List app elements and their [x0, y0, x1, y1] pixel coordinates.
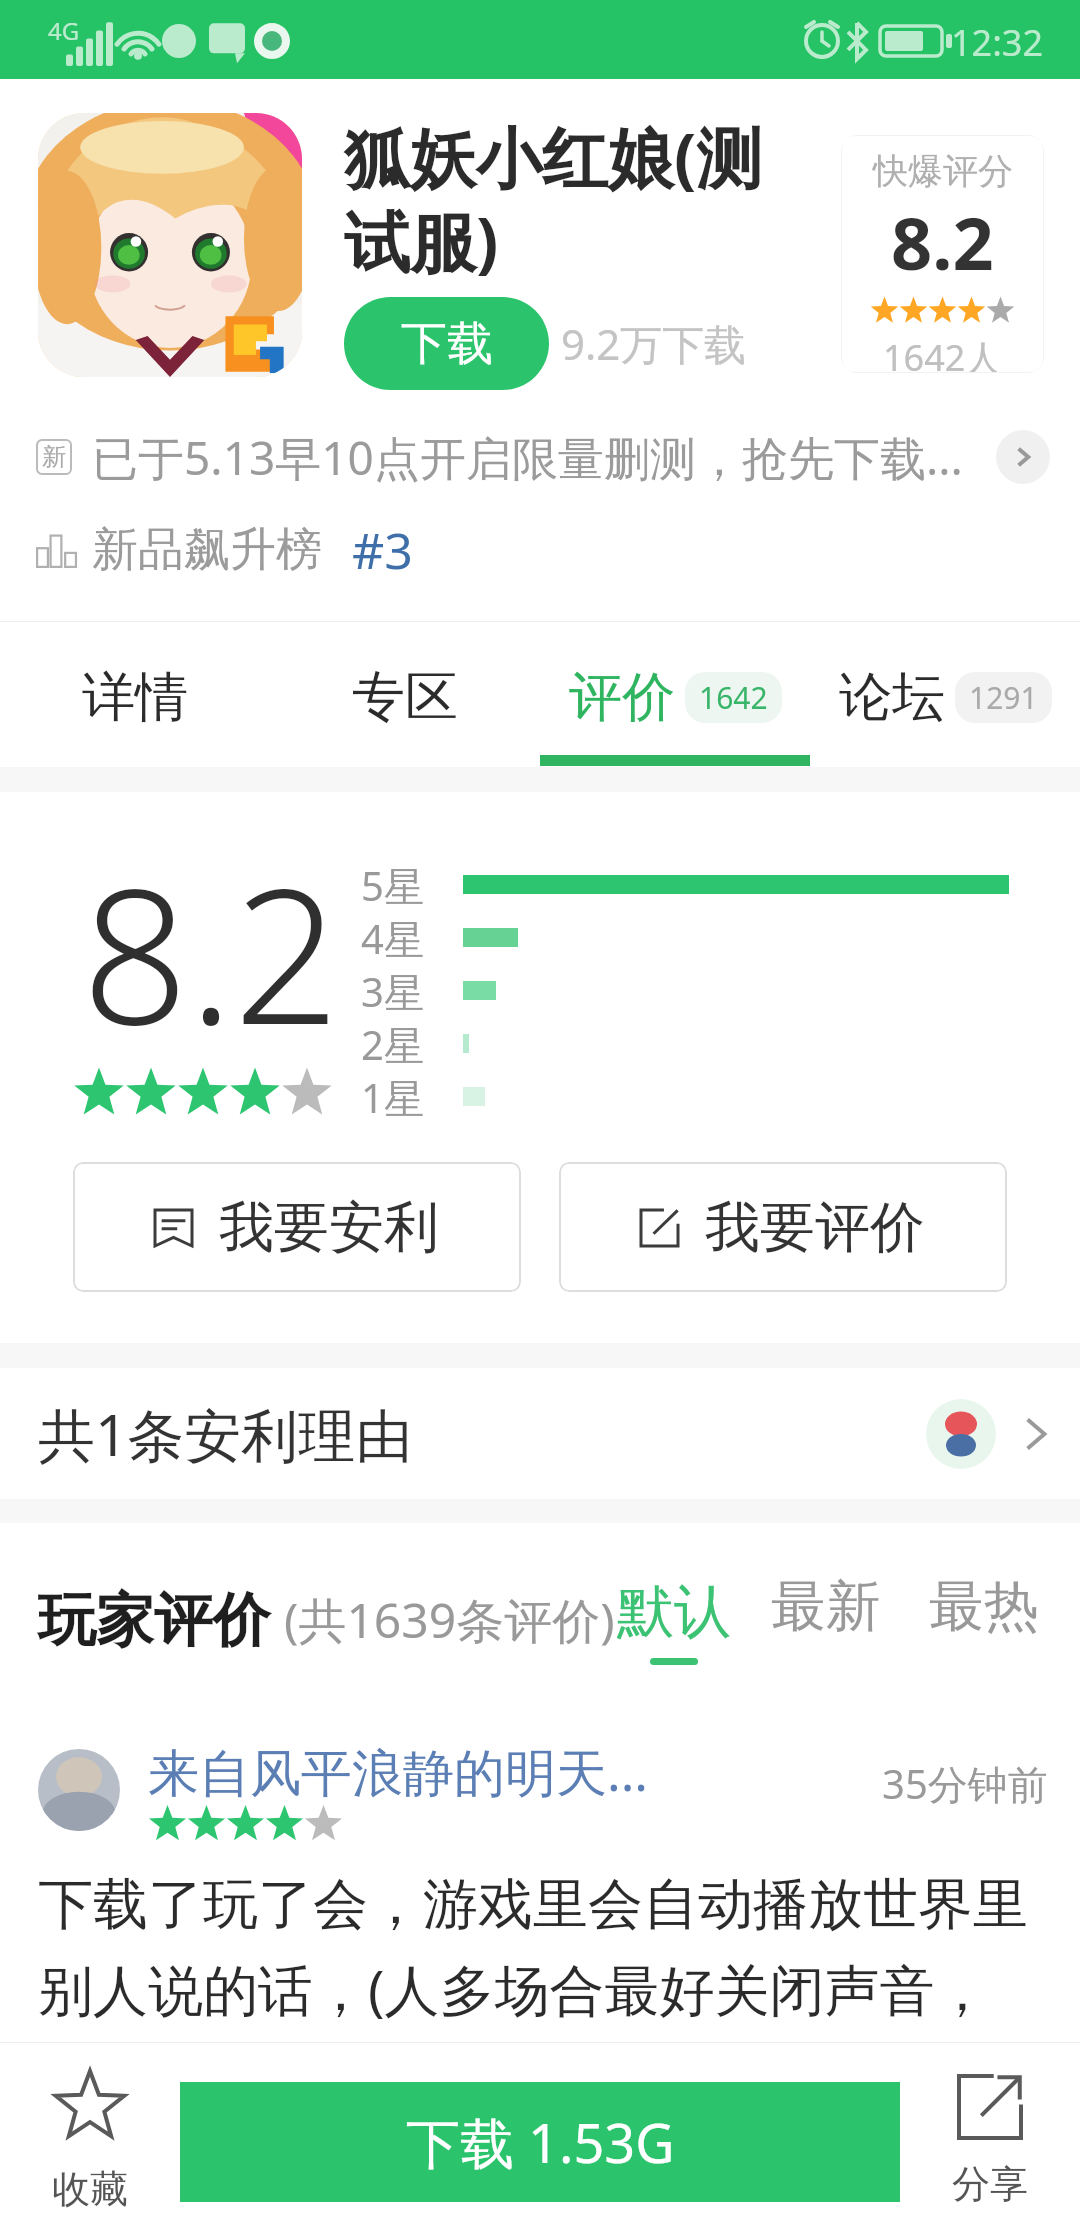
- staticText: 已于5.13早10点开启限量删测，抢先下载...: [92, 426, 963, 489]
- button[interactable]: 评价: [540, 622, 810, 767]
- staticText: 详情: [82, 664, 188, 731]
- staticText: 最新: [771, 1572, 881, 1641]
- staticText: 玩家评价: [38, 1584, 270, 1657]
- staticText: 共1条安利理由: [38, 1395, 413, 1473]
- staticText: 3星: [361, 964, 463, 1017]
- staticText: 最热: [929, 1572, 1039, 1641]
- button[interactable]: 下载: [344, 297, 549, 390]
- button[interactable]: 新品飙升榜: [36, 503, 1044, 621]
- staticText: 默认: [617, 1576, 731, 1648]
- staticText: 4星: [361, 911, 463, 964]
- button[interactable]: 论坛: [810, 622, 1080, 767]
- staticText: 我要安利: [219, 1193, 439, 1262]
- staticText: 分享: [952, 2160, 1028, 2208]
- button[interactable]: 共1条安利理由: [38, 1368, 1050, 1499]
- staticText: 下载: [401, 315, 493, 373]
- staticText: #3: [352, 516, 413, 584]
- staticText: 1星: [361, 1070, 463, 1123]
- button[interactable]: 来自风平浪静的明天...: [0, 1717, 1080, 2026]
- staticText: 5星: [361, 858, 463, 911]
- staticText: 下载 1.53G: [406, 2105, 675, 2179]
- staticText: 1642: [699, 677, 768, 718]
- staticText: 2星: [361, 1017, 463, 1070]
- button[interactable]: 最热: [929, 1572, 1039, 1641]
- staticText: 9.2万下载: [561, 315, 747, 372]
- staticText: 8.2: [891, 193, 994, 291]
- staticText: 8.2: [82, 825, 340, 1078]
- staticText: 收藏: [52, 2165, 128, 2213]
- button[interactable]: 最新: [771, 1572, 881, 1641]
- staticText: 12:32: [951, 18, 1044, 67]
- staticText: 4G: [48, 14, 80, 47]
- staticText: 新品飙升榜: [92, 521, 322, 579]
- button[interactable]: 快爆评分: [841, 135, 1044, 373]
- button[interactable]: 收藏: [0, 2043, 180, 2240]
- button[interactable]: 下载 1.53G: [180, 2082, 900, 2202]
- staticText: 我要评价: [705, 1193, 925, 1262]
- staticText: (共1639条评价): [284, 1587, 615, 1653]
- staticText: 论坛: [839, 664, 945, 731]
- button[interactable]: 默认: [617, 1576, 731, 1665]
- button[interactable]: 我要评价: [559, 1162, 1007, 1292]
- button[interactable]: 专区: [270, 622, 540, 767]
- button[interactable]: 狐妖小红娘 应用图标: [38, 113, 302, 377]
- staticText: 1291: [969, 677, 1038, 718]
- staticText: 评价: [569, 664, 675, 731]
- staticText: 快爆评分: [873, 149, 1013, 193]
- staticText: 来自风平浪静的明天...: [148, 1736, 649, 1806]
- button[interactable]: 分享: [900, 2043, 1080, 2240]
- staticText: 新: [42, 442, 66, 472]
- staticText: 1642人: [883, 333, 1002, 373]
- button[interactable]: 我要安利: [73, 1162, 521, 1292]
- button[interactable]: 详情: [0, 622, 270, 767]
- staticText: 35分钟前: [882, 1756, 1048, 1811]
- staticText: 狐妖小红娘(测试服): [344, 111, 810, 286]
- staticText: 下载了玩了会，游戏里会自动播放世界里别人说的话，(人多场合最好关闭声音，: [38, 1870, 1048, 2026]
- button[interactable]: 新: [36, 411, 1050, 503]
- staticText: 专区: [352, 664, 458, 731]
